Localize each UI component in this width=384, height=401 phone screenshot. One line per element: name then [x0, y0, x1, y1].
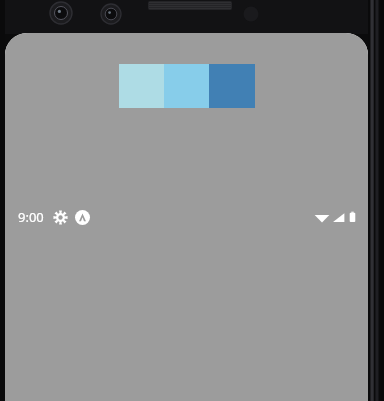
other: Settings notification — [53, 210, 68, 225]
other: App notification — [75, 210, 90, 225]
staticText: 9:00 — [18, 208, 44, 226]
